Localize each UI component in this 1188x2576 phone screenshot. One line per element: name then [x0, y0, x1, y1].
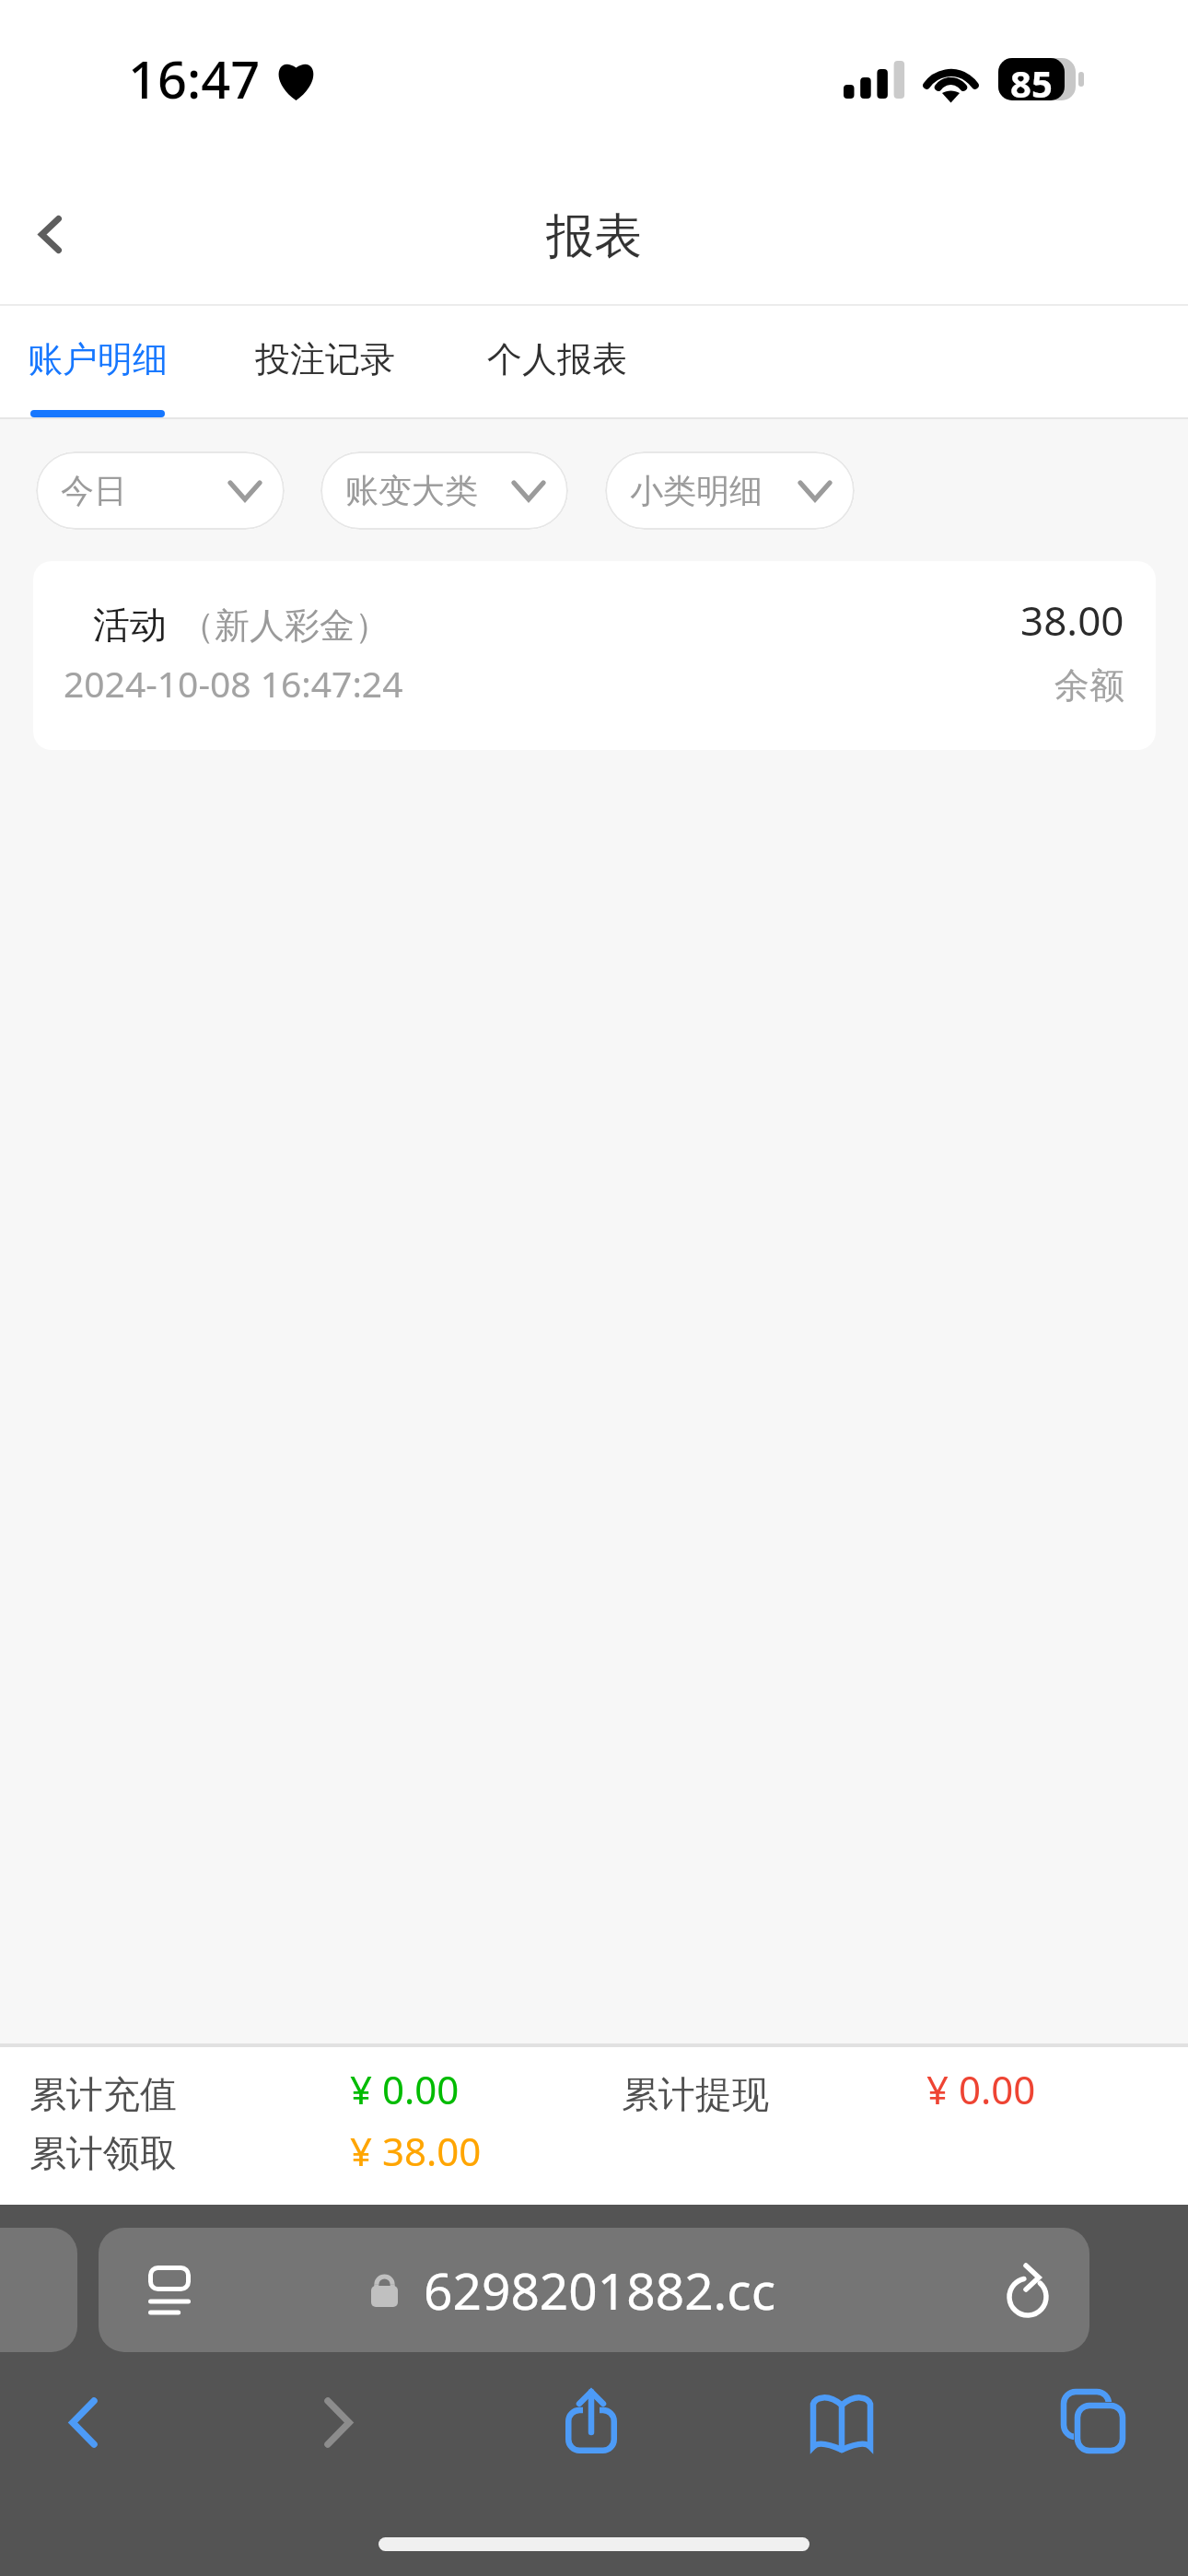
- staticText: 累计充值: [29, 2071, 177, 2117]
- staticText: 累计提现: [622, 2071, 769, 2117]
- staticText: 账户明细: [28, 337, 168, 381]
- staticText: 投注记录: [255, 337, 395, 381]
- staticText: ¥ 0.00: [926, 2063, 1036, 2115]
- button[interactable]: Share: [504, 2371, 679, 2472]
- staticText: ¥ 0.00: [350, 2063, 460, 2115]
- staticText: 今日: [61, 470, 127, 511]
- staticText: 2024-10-08 16:47:24: [64, 659, 403, 708]
- staticText: 报表: [546, 206, 642, 267]
- staticText: 活动: [93, 602, 167, 648]
- button[interactable]: Back: [11, 195, 88, 273]
- staticText: 85: [1010, 58, 1053, 100]
- staticText: ¥ 38.00: [350, 2125, 482, 2177]
- button[interactable]: Back: [0, 2371, 166, 2473]
- button[interactable]: 账变大类: [320, 451, 568, 530]
- button[interactable]: 投注记录: [241, 306, 440, 419]
- button[interactable]: 个人报表: [473, 306, 672, 419]
- button[interactable]: 今日: [36, 451, 285, 530]
- staticText: 账变大类: [345, 470, 478, 511]
- button[interactable]: Bookmarks: [756, 2374, 926, 2476]
- button[interactable]: Page settings: [99, 2228, 1089, 2352]
- button[interactable]: Tabs: [1012, 2371, 1173, 2473]
- staticText: （新人彩金）: [180, 603, 390, 648]
- button[interactable]: 账户明细: [14, 306, 213, 419]
- staticText: 16:47: [128, 43, 261, 113]
- button[interactable]: 小类明细: [605, 451, 855, 530]
- button[interactable]: Forward: [253, 2371, 424, 2473]
- staticText: 余额: [1054, 663, 1124, 708]
- staticText: 个人报表: [487, 337, 627, 381]
- button[interactable]: Reload: [996, 2256, 1064, 2324]
- staticText: 累计领取: [29, 2130, 177, 2176]
- button[interactable]: Page settings: [136, 2257, 203, 2324]
- staticText: 小类明细: [630, 470, 763, 511]
- button[interactable]: 活动: [33, 561, 1156, 750]
- staticText: 38.00: [1020, 592, 1124, 648]
- staticText: 6298201882.cc: [424, 2255, 776, 2324]
